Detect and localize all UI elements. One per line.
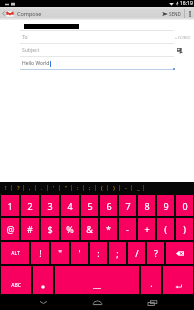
button[interactable]: : [90,242,107,264]
button[interactable]: 8 [138,195,155,216]
button[interactable]: 0 [176,195,193,216]
button[interactable]: - [120,182,132,194]
other: Attach picture [177,48,183,54]
button[interactable]: _ [132,182,144,194]
button[interactable] [55,266,139,294]
button[interactable]: Delete [166,242,193,264]
button[interactable]: $ [41,218,59,240]
button[interactable]: ) [176,218,193,240]
button[interactable]: . [141,266,161,294]
button[interactable]: ABC [1,266,31,294]
staticText: 8 [144,200,150,212]
button[interactable]: " [51,242,69,264]
staticText: / [135,247,139,259]
button[interactable]: SEND [159,7,184,20]
staticText: * [106,223,111,235]
button[interactable]: / [128,242,145,264]
staticText: ' [53,184,55,192]
staticText: SEND [169,11,181,17]
button[interactable]: & [81,218,98,240]
button[interactable]: : [72,182,84,194]
button[interactable]: ; [109,242,126,264]
button[interactable] [0,20,194,31]
button[interactable]: ( [96,182,108,194]
button[interactable]: * [100,218,117,240]
button[interactable]: 2 [21,195,39,216]
button[interactable]: % [61,218,79,240]
staticText: @ [6,223,15,235]
staticText: ( [101,184,103,192]
staticText: 1 [7,200,13,212]
button[interactable]: 9 [157,195,174,216]
button[interactable]: ? [147,242,164,264]
button[interactable]: ? [12,182,24,194]
staticText: 3 [47,200,53,212]
other: Navigate up [2,11,5,16]
button[interactable]: 3 [41,195,59,216]
staticText: . [150,277,153,289]
staticText: ' [78,247,81,259]
button[interactable]: 4 [61,195,79,216]
button[interactable]: " [60,182,72,194]
staticText: ? [17,184,20,192]
button[interactable]: To [0,31,194,44]
other: Enter [175,284,182,289]
button[interactable]: Enter [163,266,193,294]
button[interactable]: Recent apps [140,295,164,310]
staticText: Compose [17,10,42,17]
staticText: 6 [106,200,112,212]
staticText: _ [137,184,140,192]
staticText: - [125,184,127,192]
other: Delete [176,251,184,256]
staticText: ) [183,223,186,235]
button[interactable]: 7 [119,195,136,216]
button[interactable]: Hello World [0,57,194,70]
staticText: " [58,247,62,259]
button[interactable]: + [138,218,155,240]
staticText: % [66,223,74,235]
staticText: ABC [11,282,21,289]
button[interactable]: Home [85,295,109,310]
staticText: Subject [22,47,40,54]
staticText: ; [89,184,91,192]
staticText: Hello World [22,60,50,67]
button[interactable]: Emoji [33,266,53,294]
button[interactable]: # [21,218,39,240]
button[interactable]: , [24,182,36,194]
button[interactable]: ) [108,182,120,194]
staticText: # [27,223,33,235]
button[interactable]: More options [185,7,194,20]
staticText: To [22,34,28,41]
staticText: ! [5,184,7,192]
staticText: + CC/BCC [175,35,191,40]
button[interactable]: @ [1,218,19,240]
staticText: : [77,184,79,192]
staticText: ( [164,223,167,235]
staticText: 16:19 [180,0,193,7]
staticText: 5 [87,200,93,212]
staticText: 2 [27,200,33,212]
button[interactable]: 5 [81,195,98,216]
staticText: : [97,247,100,259]
button[interactable]: 1 [1,195,19,216]
button[interactable]: ; [84,182,96,194]
button[interactable]: Navigate up [0,7,42,20]
staticText: ! [39,247,42,259]
button[interactable]: . [36,182,48,194]
button[interactable]: Subject [0,44,194,57]
button[interactable]: ! [31,242,49,264]
button[interactable]: Back [31,295,55,310]
button[interactable]: 6 [100,195,117,216]
staticText: 7 [125,200,131,212]
button[interactable]: ! [0,182,12,194]
button[interactable]: ( [157,218,174,240]
staticText: $ [47,223,53,235]
staticText: 0 [182,200,188,212]
button[interactable]: ' [48,182,60,194]
button[interactable]: ' [71,242,88,264]
staticText: ALT [11,250,20,257]
button[interactable]: ALT [1,242,29,264]
button[interactable]: - [119,218,136,240]
other: Emoji [41,285,45,289]
staticText: 9 [163,200,169,212]
